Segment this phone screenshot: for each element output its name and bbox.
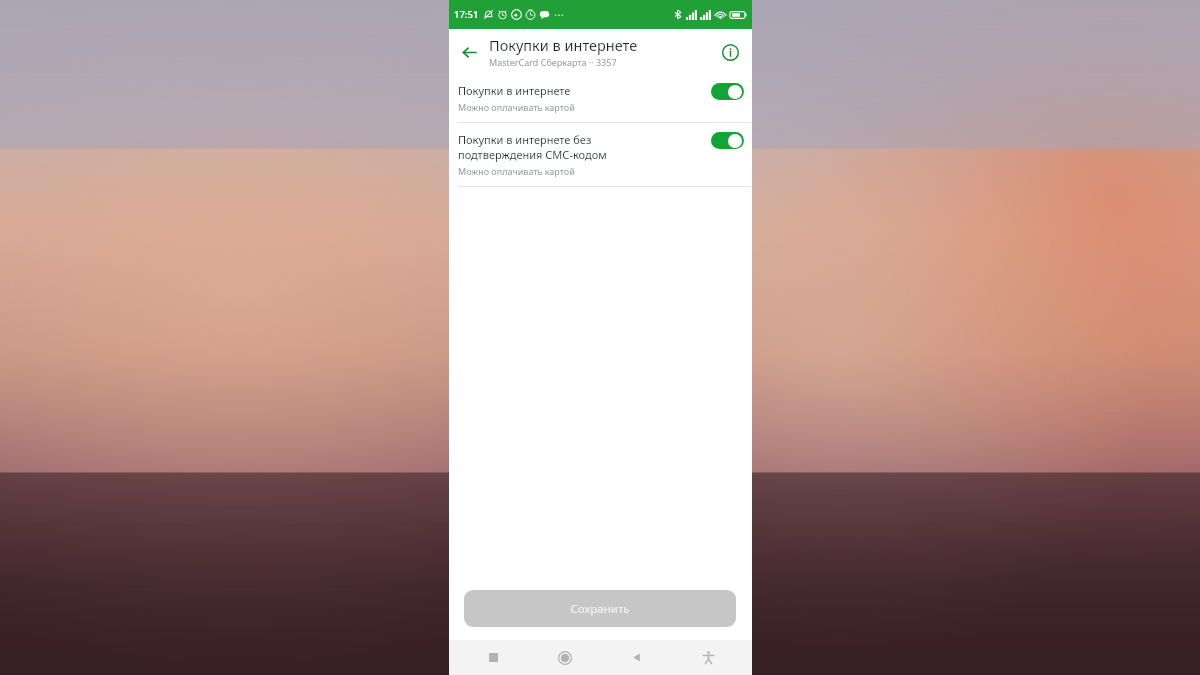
button[interactable]: Back (449, 32, 489, 72)
button[interactable]: Recent apps (465, 640, 521, 675)
button[interactable]: Accessibility (680, 640, 736, 675)
staticText: Покупки в интернете (458, 83, 571, 98)
staticText: 17:51 (454, 8, 479, 21)
staticText: Сохранить (570, 601, 630, 617)
staticText: Покупки в интернете (489, 35, 638, 55)
button[interactable]: Toggle on (711, 132, 744, 149)
button[interactable]: Home (537, 640, 593, 675)
staticText: Можно оплачивать картой (458, 101, 575, 113)
staticText: MasterCard Сберкарта ·· 3357 (489, 56, 617, 68)
button[interactable]: Back (608, 640, 664, 675)
staticText: Можно оплачивать картой (458, 165, 575, 177)
staticText: Покупки в интернете без (458, 132, 592, 147)
button[interactable]: Покупки в интернете без (449, 123, 752, 186)
button[interactable]: Toggle on (711, 83, 744, 100)
staticText: подтверждения СМС-кодом (458, 147, 607, 162)
button[interactable]: Info (710, 32, 750, 72)
button[interactable]: Покупки в интернете (449, 74, 752, 122)
button[interactable]: Сохранить (464, 590, 736, 627)
